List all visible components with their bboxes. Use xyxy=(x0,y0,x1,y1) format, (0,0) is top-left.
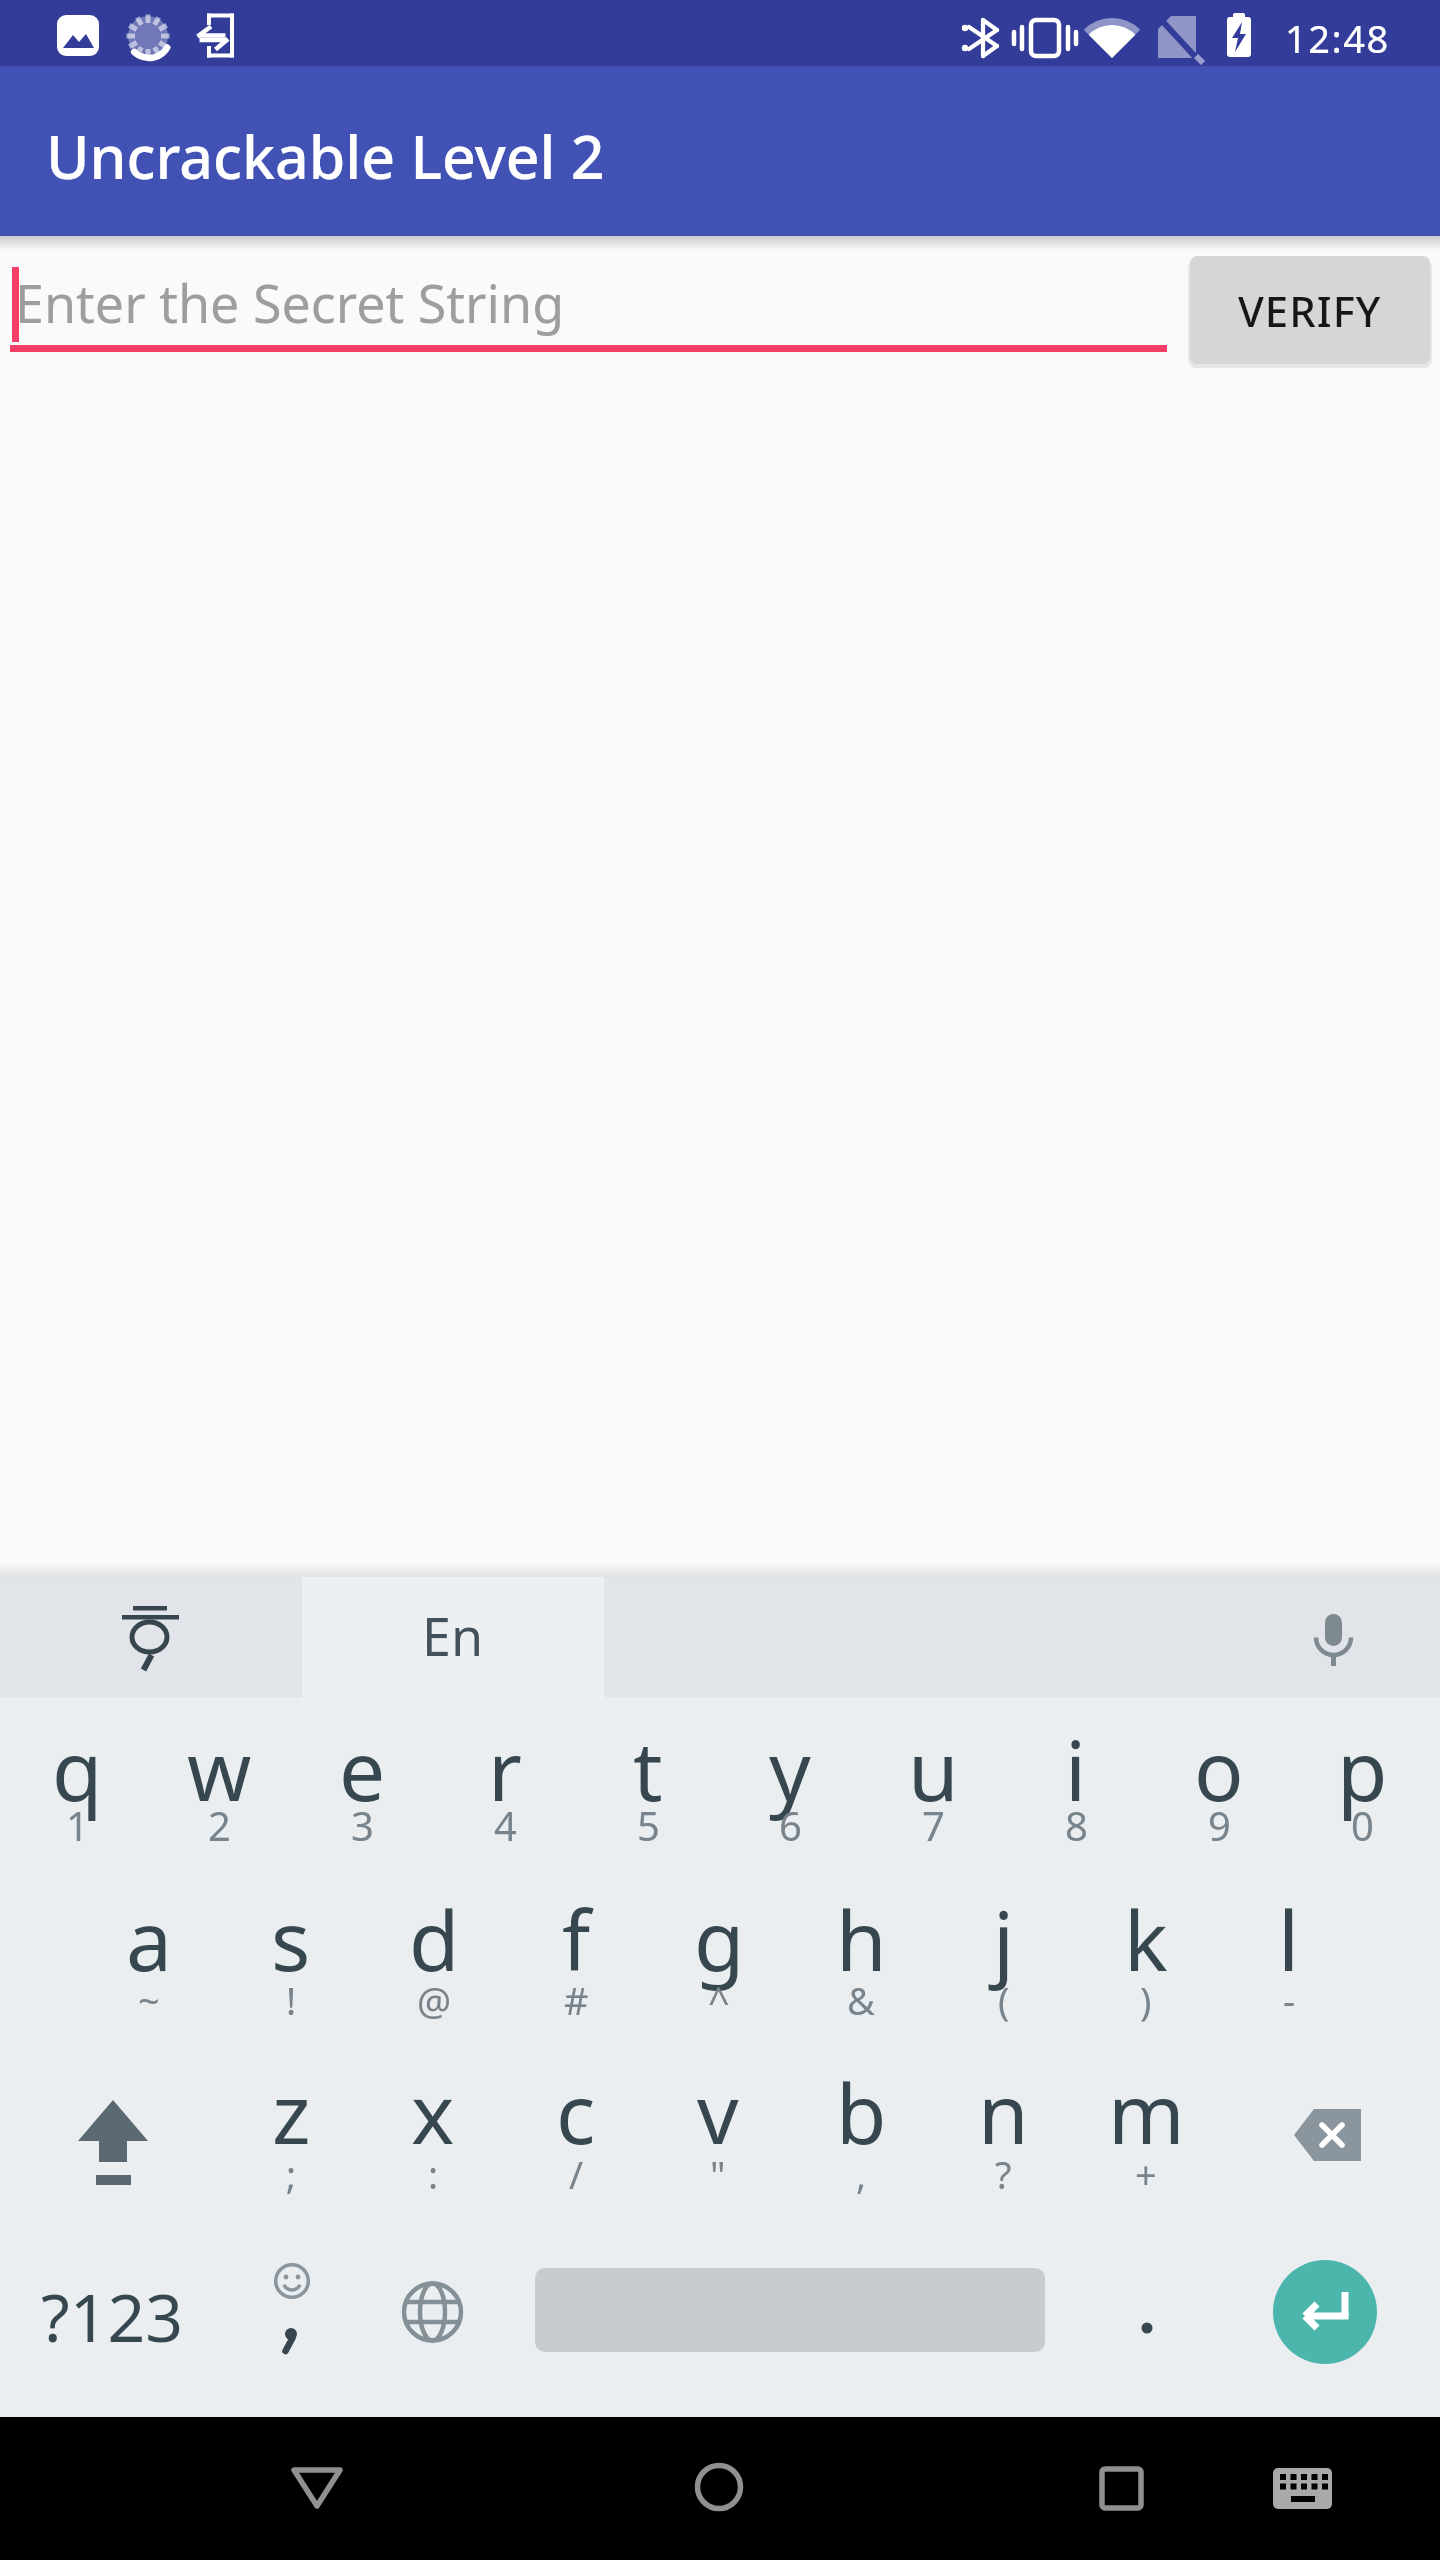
button[interactable] xyxy=(148,1700,290,1878)
staticText: z xyxy=(272,2056,311,2168)
button[interactable] xyxy=(647,2050,789,2228)
button[interactable] xyxy=(1218,1878,1360,2050)
staticText: Uncrackable Level 2 xyxy=(46,116,605,196)
staticText: l xyxy=(1278,1883,1300,1995)
staticText: + xyxy=(1135,2148,1157,2200)
button[interactable] xyxy=(933,1878,1075,2050)
button[interactable] xyxy=(1273,2260,1377,2364)
staticText: q xyxy=(52,1713,103,1825)
button[interactable]: VERIFY xyxy=(1190,256,1430,364)
button[interactable] xyxy=(6,1700,148,1878)
button[interactable] xyxy=(1075,2050,1217,2228)
staticText: ( xyxy=(998,1974,1010,2026)
staticText: ?123 xyxy=(41,2271,183,2361)
staticText: VERIFY xyxy=(1238,282,1382,339)
button[interactable] xyxy=(363,1878,505,2050)
button[interactable] xyxy=(1075,2228,1220,2408)
staticText: n xyxy=(978,2056,1029,2168)
button[interactable] xyxy=(862,1700,1004,1878)
staticText: d xyxy=(409,1883,460,1995)
staticText: 0 xyxy=(1351,1798,1374,1852)
staticText: : xyxy=(428,2148,439,2200)
button[interactable] xyxy=(78,1878,220,2050)
button[interactable] xyxy=(1245,2420,1365,2560)
staticText: o xyxy=(1194,1713,1244,1825)
staticText: ^ xyxy=(708,1974,730,2026)
button[interactable] xyxy=(1255,2050,1405,2228)
button[interactable]: En xyxy=(302,1575,604,1695)
staticText: s xyxy=(271,1883,311,1995)
staticText: f xyxy=(562,1883,591,1995)
staticText: 3 xyxy=(351,1798,374,1852)
staticText: ~ xyxy=(138,1974,160,2026)
staticText: e xyxy=(339,1713,386,1825)
staticText: j xyxy=(993,1883,1015,1995)
staticText: ) xyxy=(1140,1974,1152,2026)
staticText: " xyxy=(710,2148,726,2200)
staticText: k xyxy=(1124,1883,1168,1995)
button[interactable] xyxy=(40,2050,190,2228)
staticText: / xyxy=(569,2148,584,2200)
staticText: ? xyxy=(995,2148,1012,2200)
staticText: 7 xyxy=(922,1798,945,1852)
button[interactable] xyxy=(220,1878,362,2050)
staticText: @ xyxy=(417,1974,452,2026)
button[interactable] xyxy=(1050,2420,1190,2560)
staticText: t xyxy=(633,1713,663,1825)
staticText: r xyxy=(488,1713,522,1825)
button[interactable] xyxy=(577,1700,719,1878)
button[interactable] xyxy=(650,2420,790,2560)
staticText: g xyxy=(694,1883,745,1995)
button[interactable] xyxy=(932,2050,1074,2228)
staticText: 9 xyxy=(1208,1798,1231,1852)
staticText: # xyxy=(564,1974,589,2026)
staticText: 5 xyxy=(637,1798,660,1852)
button[interactable] xyxy=(1291,1700,1433,1878)
staticText: 6 xyxy=(779,1798,802,1852)
staticText: ; xyxy=(286,2148,297,2200)
button[interactable] xyxy=(1005,1700,1147,1878)
button[interactable] xyxy=(1253,1577,1413,1697)
button[interactable] xyxy=(362,2050,504,2228)
button[interactable] xyxy=(719,1700,861,1878)
staticText: 8 xyxy=(1065,1798,1088,1852)
staticText: c xyxy=(556,2056,596,2168)
staticText: Enter the Secret String xyxy=(15,267,565,338)
button[interactable] xyxy=(1075,1878,1217,2050)
staticText: 4 xyxy=(494,1798,517,1852)
button[interactable] xyxy=(40,1577,280,1697)
button[interactable] xyxy=(30,2228,200,2408)
staticText: 2 xyxy=(208,1798,231,1852)
staticText: b xyxy=(836,2056,887,2168)
button[interactable] xyxy=(434,1700,576,1878)
button[interactable] xyxy=(790,2050,932,2228)
button[interactable] xyxy=(790,1878,932,2050)
button[interactable] xyxy=(291,1700,433,1878)
staticText: h xyxy=(836,1883,887,1995)
staticText: i xyxy=(1065,1713,1087,1825)
staticText: 12:48 xyxy=(1285,12,1390,64)
staticText: a xyxy=(126,1883,173,1995)
button[interactable] xyxy=(220,2050,362,2228)
staticText: , xyxy=(856,2148,867,2200)
staticText: y xyxy=(769,1713,811,1825)
button[interactable] xyxy=(10,250,1170,360)
staticText: m xyxy=(1108,2056,1185,2168)
button[interactable] xyxy=(360,2228,505,2408)
staticText: ! xyxy=(286,1974,297,2026)
button[interactable] xyxy=(648,1878,790,2050)
staticText: 1 xyxy=(66,1798,89,1852)
staticText: v xyxy=(697,2056,739,2168)
staticText: & xyxy=(847,1974,875,2026)
staticText: En xyxy=(422,1600,484,1671)
staticText: p xyxy=(1337,1713,1388,1825)
staticText: u xyxy=(908,1713,959,1825)
staticText: w xyxy=(187,1713,252,1825)
button[interactable] xyxy=(250,2420,390,2560)
button[interactable] xyxy=(220,2228,365,2408)
button[interactable] xyxy=(505,1878,647,2050)
button[interactable] xyxy=(1148,1700,1290,1878)
button[interactable] xyxy=(505,2050,647,2228)
staticText: - xyxy=(1283,1974,1296,2026)
